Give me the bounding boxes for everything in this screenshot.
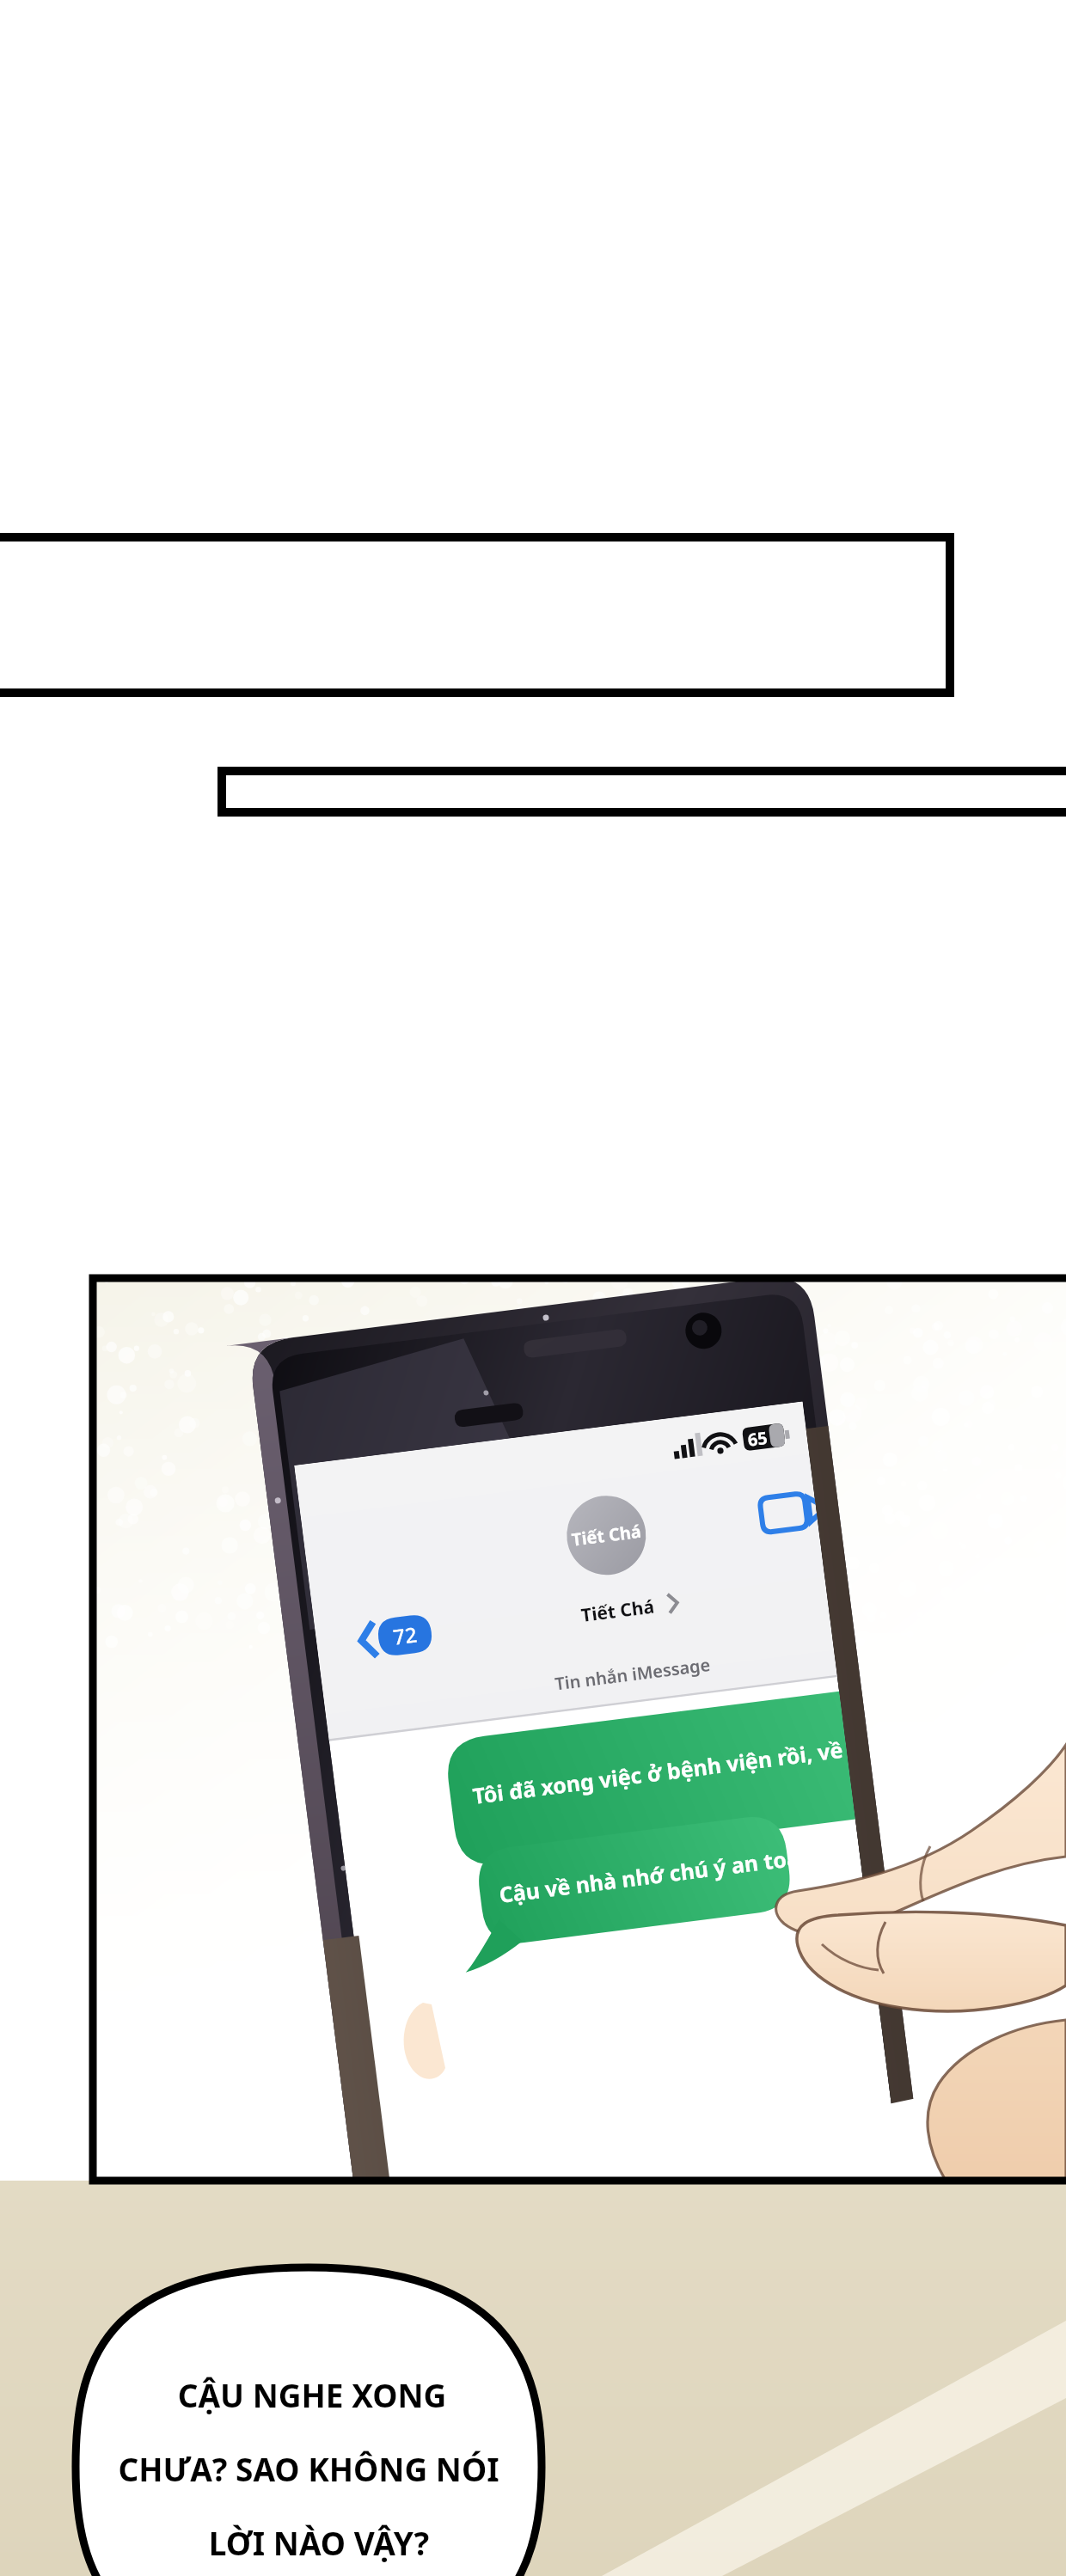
button[interactable]: Comic page with phone chat screen (0, 0, 1066, 2576)
